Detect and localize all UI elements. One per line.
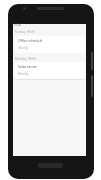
staticText: 10:00 [14,23,22,27]
button[interactable]: Salsa server [15,62,85,79]
staticText: Weekly [18,72,29,76]
staticText: Salsa server [18,64,38,69]
staticText: Office schedule [18,38,43,43]
staticText: Monday, 08:00 [15,57,36,61]
staticText: Weekly [18,46,29,50]
staticText: Sunday, 08:00 [15,30,35,34]
button[interactable]: Office schedule [15,36,85,53]
